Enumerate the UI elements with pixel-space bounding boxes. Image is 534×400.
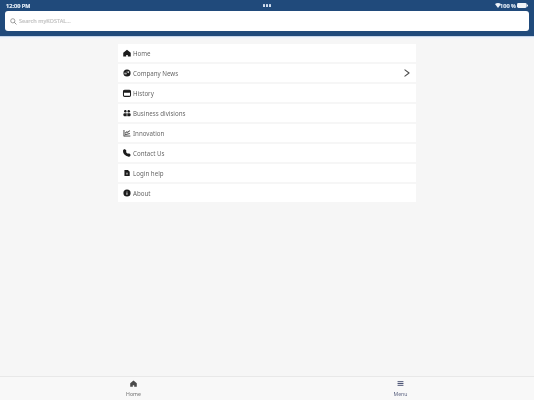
button[interactable]: Company News	[118, 64, 416, 82]
button[interactable]: About	[118, 184, 416, 202]
button[interactable]: Home	[118, 44, 416, 62]
staticText: Company News	[133, 69, 179, 77]
button[interactable]: Innovation	[118, 124, 416, 142]
button[interactable]: Home	[0, 377, 267, 400]
button[interactable]: Search myKOSTAL...	[5, 11, 529, 31]
staticText: About	[133, 189, 151, 197]
staticText: Menu	[393, 390, 408, 397]
button[interactable]: Business divisions	[118, 104, 416, 122]
staticText: 100 %	[500, 2, 516, 10]
staticText: Contact Us	[133, 149, 165, 157]
staticText: Innovation	[133, 129, 165, 137]
staticText: History	[133, 89, 154, 97]
staticText: Business divisions	[133, 109, 186, 117]
button[interactable]: Menu	[267, 377, 534, 400]
button[interactable]: Contact Us	[118, 144, 416, 162]
staticText: 12:00 PM	[6, 2, 31, 10]
staticText: Search myKOSTAL...	[19, 17, 71, 25]
staticText: Home	[126, 390, 141, 397]
button[interactable]: Login help	[118, 164, 416, 182]
staticText: Home	[133, 49, 151, 57]
staticText: Login help	[133, 169, 164, 177]
button[interactable]: History	[118, 84, 416, 102]
